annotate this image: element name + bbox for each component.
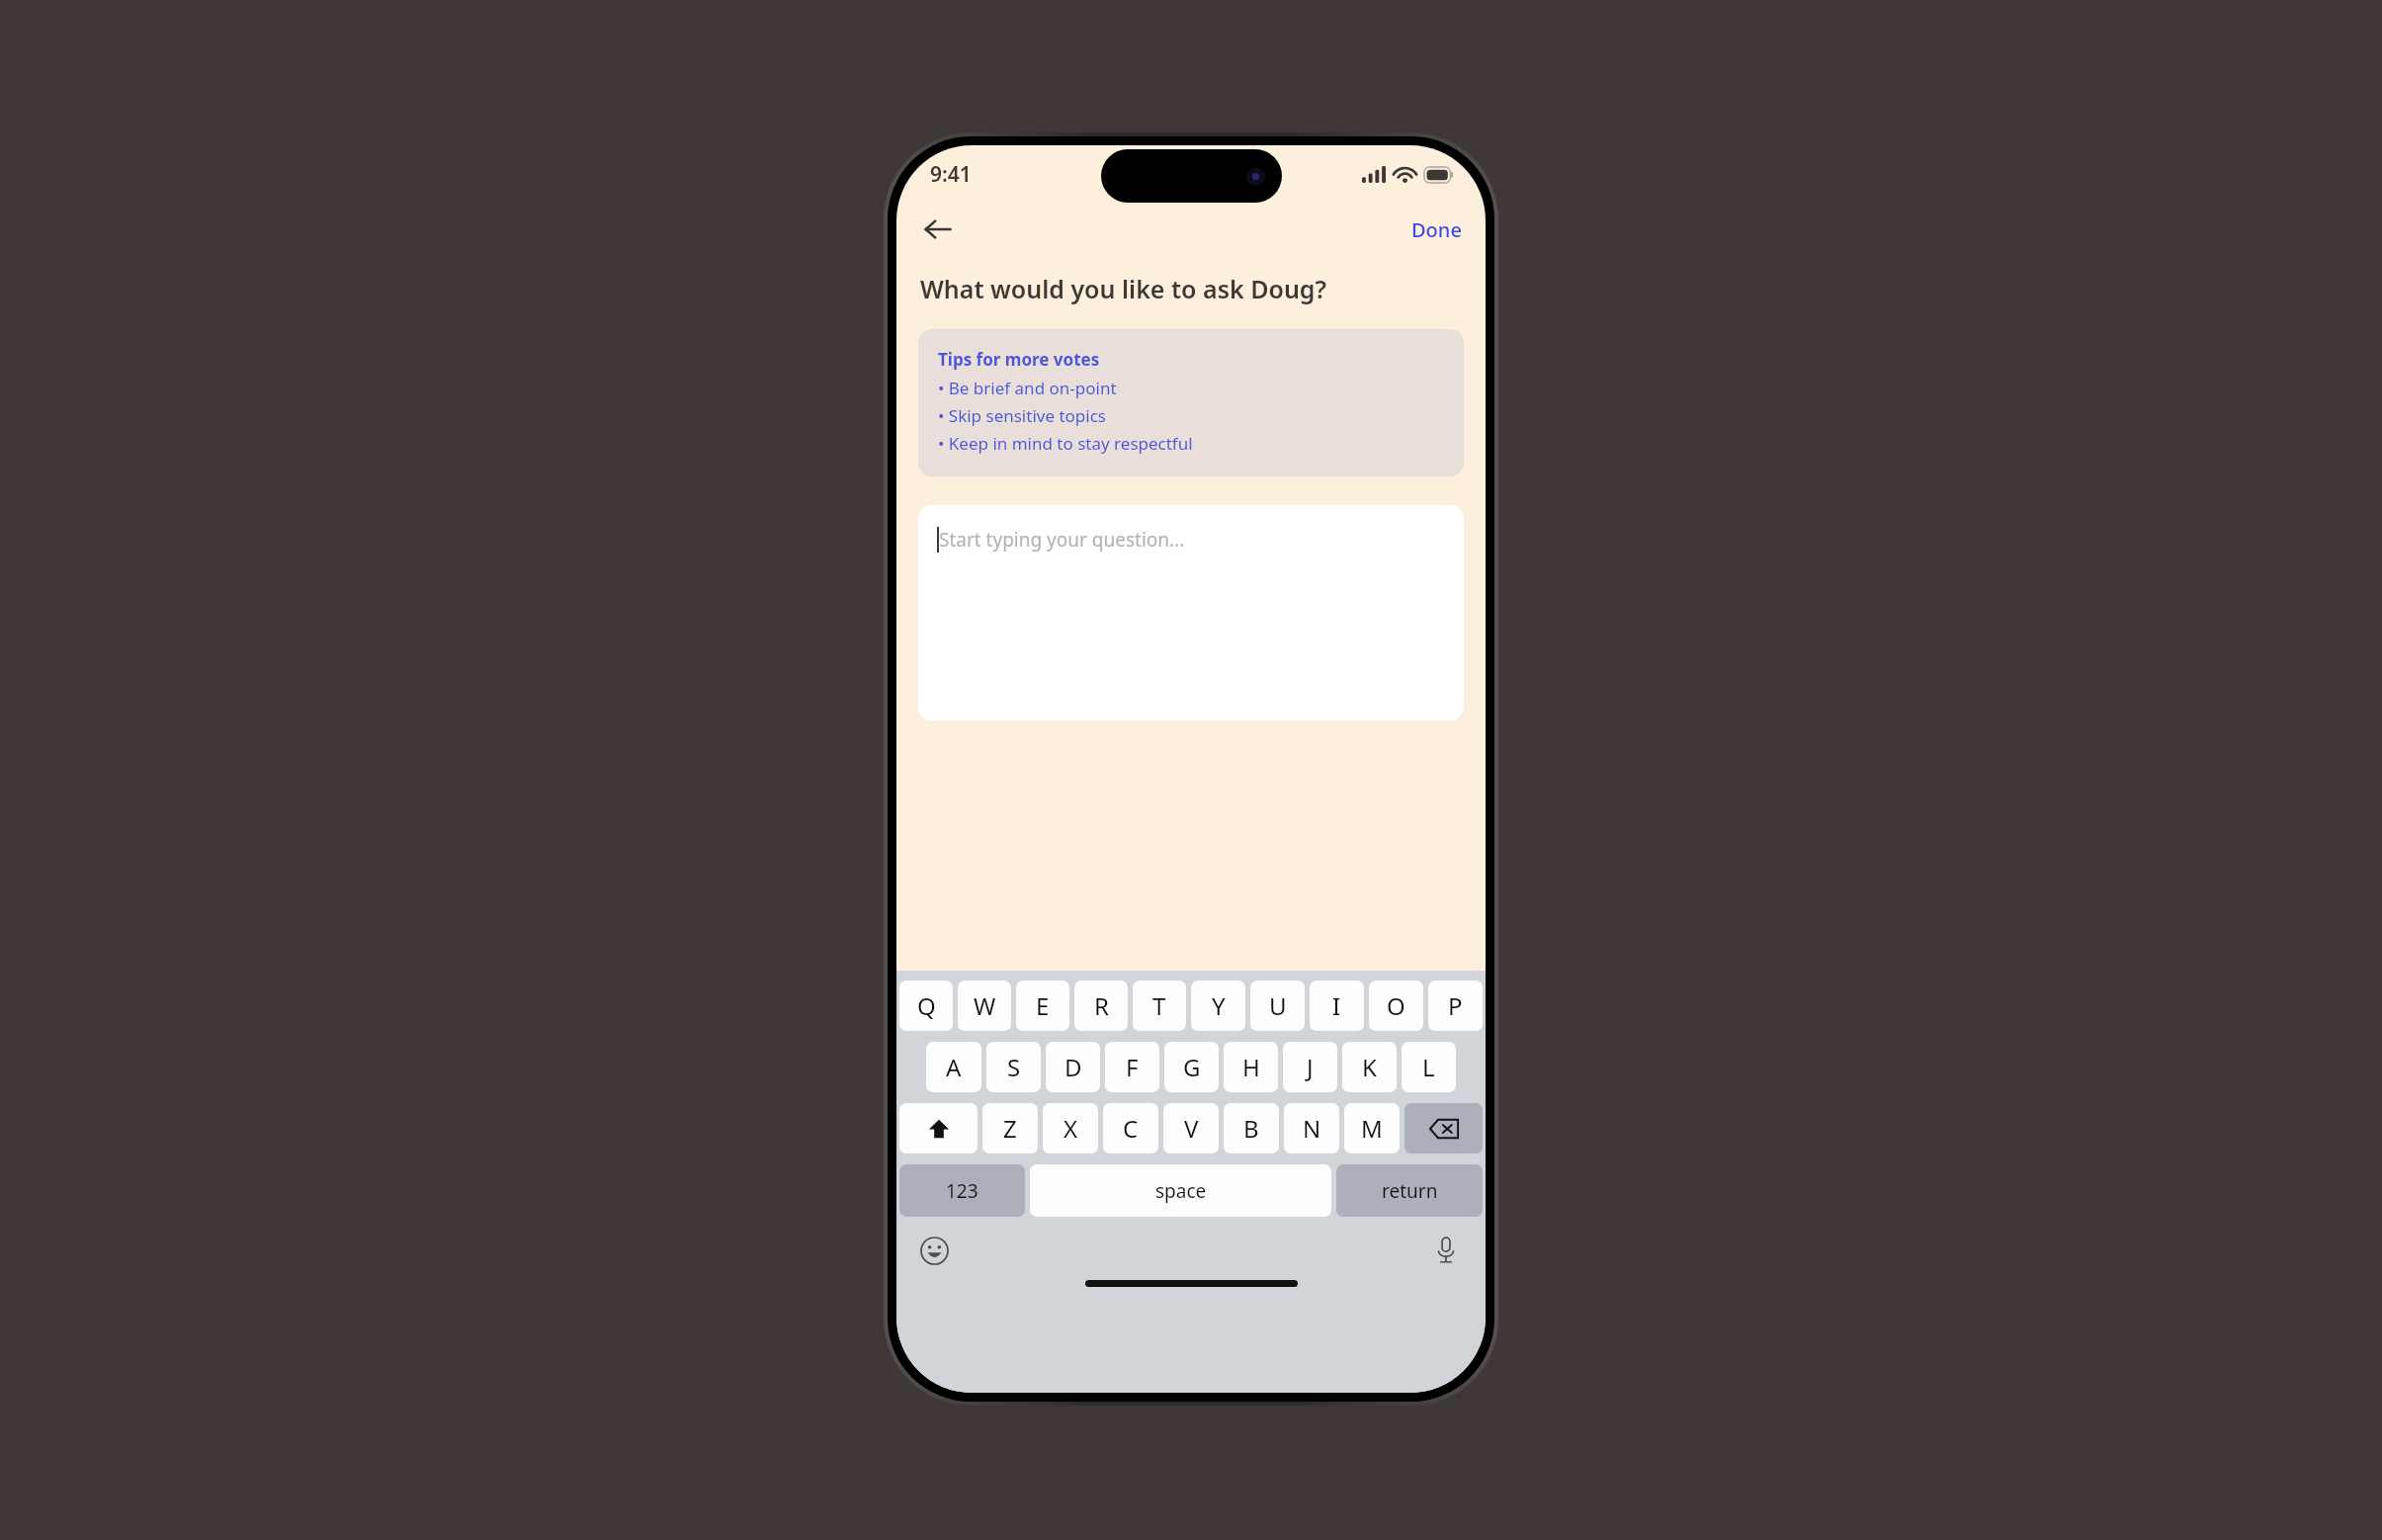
staticText: • Be brief and on-point [938,377,1117,399]
button[interactable]: Back [910,202,966,257]
staticText: Y [1212,989,1226,1022]
staticText: S [1007,1051,1021,1083]
button[interactable]: Dictation [1426,1231,1466,1270]
button[interactable]: E [1016,981,1069,1031]
button[interactable]: Y [1191,981,1245,1031]
staticText: • Keep in mind to stay respectful [938,432,1193,455]
button[interactable]: N [1284,1103,1339,1154]
staticText: U [1269,989,1287,1022]
staticText: R [1094,989,1109,1022]
button[interactable]: return [1336,1164,1483,1217]
staticText: N [1303,1112,1321,1145]
staticText: Z [1003,1112,1017,1145]
staticText: F [1126,1051,1139,1083]
staticText: E [1036,989,1050,1022]
button[interactable]: O [1369,981,1423,1031]
button[interactable]: Tips for more votes [918,329,1464,476]
staticText: K [1362,1051,1377,1083]
staticText: C [1123,1112,1139,1145]
staticText: J [1307,1051,1314,1083]
button[interactable]: F [1105,1042,1159,1092]
staticText: space [1155,1178,1207,1204]
staticText: Done [1411,216,1462,243]
staticText: V [1184,1112,1199,1145]
button[interactable]: S [986,1042,1041,1092]
button[interactable]: L [1402,1042,1456,1092]
button[interactable]: Backspace [1404,1103,1483,1154]
button[interactable]: W [958,981,1011,1031]
button[interactable]: H [1224,1042,1278,1092]
staticText: M [1361,1112,1383,1145]
staticText: • Skip sensitive topics [938,404,1106,427]
button[interactable]: C [1103,1103,1158,1154]
button[interactable]: space [1030,1164,1331,1217]
button[interactable]: Done [1402,211,1472,249]
button[interactable]: Emoji [914,1231,954,1270]
staticText: W [974,989,996,1022]
staticText: L [1422,1051,1435,1083]
button[interactable]: Shift [899,1103,978,1154]
staticText: A [946,1051,962,1083]
button[interactable]: Start typing your question... [918,505,1464,721]
button[interactable]: Q [899,981,953,1031]
button[interactable]: U [1250,981,1305,1031]
button[interactable]: B [1224,1103,1279,1154]
button[interactable]: P [1428,981,1483,1031]
staticText: Q [917,989,936,1022]
button[interactable]: T [1133,981,1186,1031]
button[interactable]: G [1164,1042,1219,1092]
staticText: G [1183,1051,1201,1083]
staticText: 123 [946,1178,978,1204]
staticText: What would you like to ask Doug? [920,272,1327,305]
staticText: O [1387,989,1405,1022]
staticText: P [1448,989,1463,1022]
staticText: I [1332,989,1341,1022]
button[interactable]: M [1344,1103,1400,1154]
button[interactable]: K [1342,1042,1397,1092]
button[interactable]: 123 [899,1164,1025,1217]
staticText: T [1152,989,1166,1022]
button[interactable]: A [926,1042,981,1092]
button[interactable]: R [1074,981,1128,1031]
staticText: D [1064,1051,1082,1083]
button[interactable]: V [1163,1103,1219,1154]
staticText: Tips for more votes [938,348,1100,371]
staticText: 9:41 [930,160,972,189]
staticText: B [1243,1112,1259,1145]
staticText: Start typing your question... [939,527,1185,553]
staticText: return [1382,1178,1438,1204]
button[interactable]: J [1283,1042,1337,1092]
button[interactable]: I [1310,981,1364,1031]
button[interactable]: Z [982,1103,1038,1154]
button[interactable]: X [1043,1103,1098,1154]
staticText: X [1063,1112,1078,1145]
button[interactable]: D [1046,1042,1100,1092]
staticText: H [1242,1051,1260,1083]
